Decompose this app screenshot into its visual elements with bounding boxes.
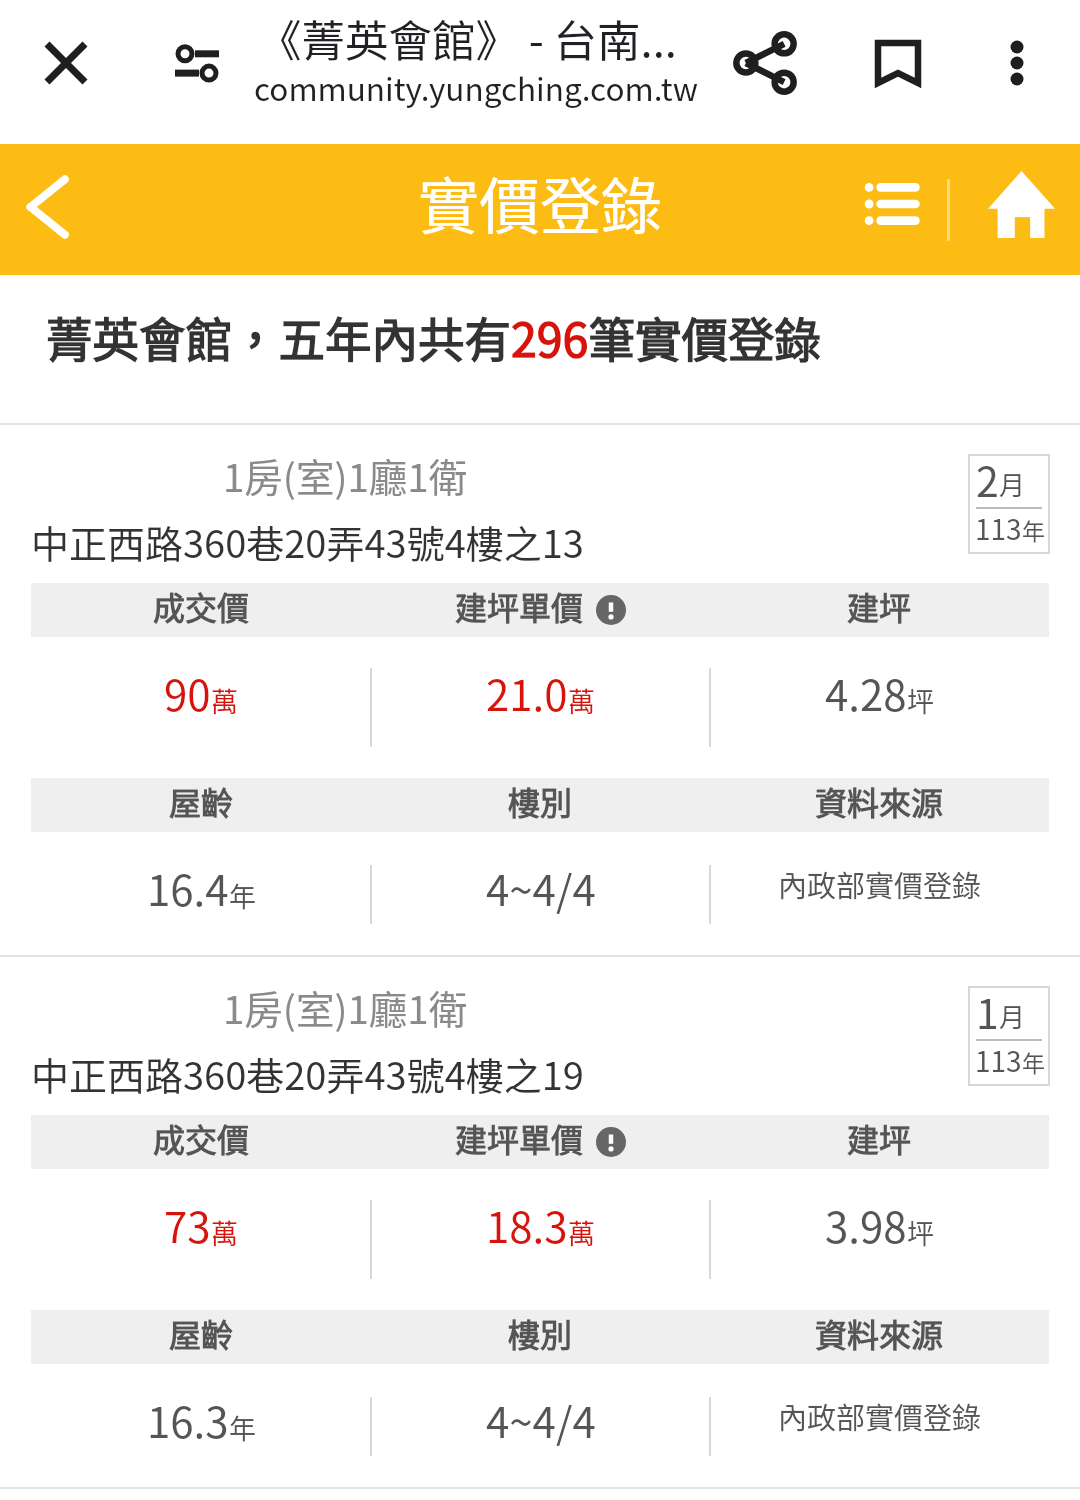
staticText: 18.3 — [486, 1194, 568, 1255]
staticText: 內政部實價登錄 — [778, 863, 982, 905]
staticText: 成交價 — [153, 583, 250, 629]
staticText: 1房(室)1廳1衛 — [223, 979, 468, 1035]
staticText: 年 — [229, 1408, 256, 1447]
staticText: 4.28 — [825, 662, 907, 723]
staticText: 萬 — [568, 1213, 595, 1252]
staticText: 年 — [229, 876, 256, 915]
staticText: 16.3 — [147, 1389, 229, 1450]
staticText: 90 — [164, 662, 211, 723]
staticText: 屋齡 — [169, 778, 234, 824]
staticText: 16.4 — [147, 857, 229, 918]
staticText: 菁英會館，五年內共有296筆實價登錄 — [46, 303, 821, 370]
staticText: 實價登錄 — [418, 158, 663, 246]
button[interactable]: More options — [977, 23, 1057, 103]
staticText: 資料來源 — [815, 778, 944, 824]
staticText: 建坪單價 — [455, 1115, 584, 1161]
staticText: 內政部實價登錄 — [778, 1395, 982, 1437]
button[interactable]: Close — [26, 23, 106, 103]
button[interactable]: Share — [725, 23, 805, 103]
button[interactable]: List view — [845, 158, 937, 250]
staticText: 1房(室)1廳1衛 — [223, 447, 468, 503]
staticText: 中正西路360巷20弄43號4樓之13 — [31, 514, 584, 569]
staticText: 樓別 — [508, 1310, 573, 1356]
staticText: 成交價 — [153, 1115, 250, 1161]
button[interactable]: Bookmark — [858, 23, 938, 103]
button[interactable]: 1房(室)1廳1衛 — [0, 957, 1080, 1489]
staticText: 4~4/4 — [486, 1389, 596, 1450]
staticText: 月 — [999, 465, 1026, 503]
button[interactable]: Page info — [157, 23, 237, 103]
staticText: 坪 — [907, 1213, 934, 1252]
staticText: 萬 — [568, 681, 595, 720]
button[interactable]: 1房(室)1廳1衛 — [0, 425, 1080, 957]
staticText: 3.98 — [825, 1194, 907, 1255]
staticText: 屋齡 — [169, 1310, 234, 1356]
staticText: 21.0 — [486, 662, 568, 723]
staticText: 年 — [1022, 513, 1045, 546]
staticText: 113 — [975, 508, 1022, 549]
staticText: 《菁英會館》 - 台南... — [258, 7, 677, 70]
staticText: 4~4/4 — [486, 857, 596, 918]
staticText: 1 — [976, 981, 999, 1040]
staticText: 中正西路360巷20弄43號4樓之19 — [31, 1046, 584, 1101]
staticText: 建坪單價 — [455, 583, 584, 629]
staticText: 月 — [999, 997, 1026, 1035]
staticText: 2 — [976, 449, 999, 508]
staticText: 坪 — [907, 681, 934, 720]
staticText: 建坪 — [847, 583, 912, 629]
button[interactable]: Home — [975, 158, 1067, 250]
staticText: community.yungching.com.tw — [254, 64, 698, 110]
staticText: 萬 — [211, 1213, 238, 1252]
staticText: 樓別 — [508, 778, 573, 824]
staticText: 資料來源 — [815, 1310, 944, 1356]
staticText: 年 — [1022, 1045, 1045, 1078]
button[interactable]: Back — [1, 159, 97, 255]
staticText: 113 — [975, 1040, 1022, 1081]
staticText: 73 — [164, 1194, 211, 1255]
staticText: 建坪 — [847, 1115, 912, 1161]
staticText: 萬 — [211, 681, 238, 720]
